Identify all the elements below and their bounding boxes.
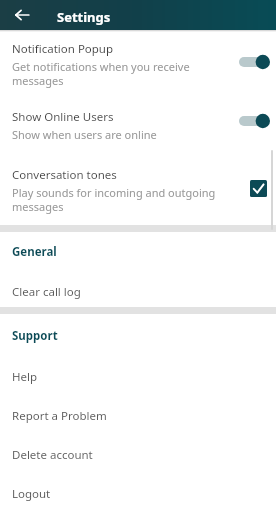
button[interactable]: Clear call log: [0, 272, 276, 311]
staticText: Conversation tones: [12, 167, 117, 183]
button[interactable]: Show Online Users: [0, 104, 276, 150]
staticText: Delete account: [12, 447, 93, 463]
staticText: Clear call log: [12, 284, 81, 300]
button[interactable]: Help: [0, 357, 276, 396]
button[interactable]: Logout: [0, 474, 276, 512]
staticText: General: [12, 244, 57, 260]
staticText: Notification Popup: [12, 41, 114, 57]
staticText: Report a Problem: [12, 408, 107, 424]
staticText: Show Online Users: [12, 109, 114, 125]
button[interactable]: Back: [7, 0, 37, 30]
staticText: Settings: [57, 8, 111, 26]
button[interactable]: Report a Problem: [0, 396, 276, 435]
staticText: Play sounds for incoming and outgoing me…: [12, 185, 230, 214]
staticText: Show when users are online: [12, 127, 157, 142]
button[interactable]: Conversation tones: [0, 162, 276, 220]
staticText: Support: [12, 328, 58, 344]
button[interactable]: Delete account: [0, 435, 276, 474]
button[interactable]: Notification Popup: [0, 36, 276, 94]
staticText: Help: [12, 369, 38, 385]
button[interactable]: Conversation tones checkbox: [241, 173, 275, 203]
button[interactable]: Toggle: [234, 108, 274, 134]
staticText: Logout: [12, 486, 51, 502]
staticText: Get notifications when you receive messa…: [12, 59, 222, 88]
button[interactable]: Toggle: [234, 49, 274, 75]
